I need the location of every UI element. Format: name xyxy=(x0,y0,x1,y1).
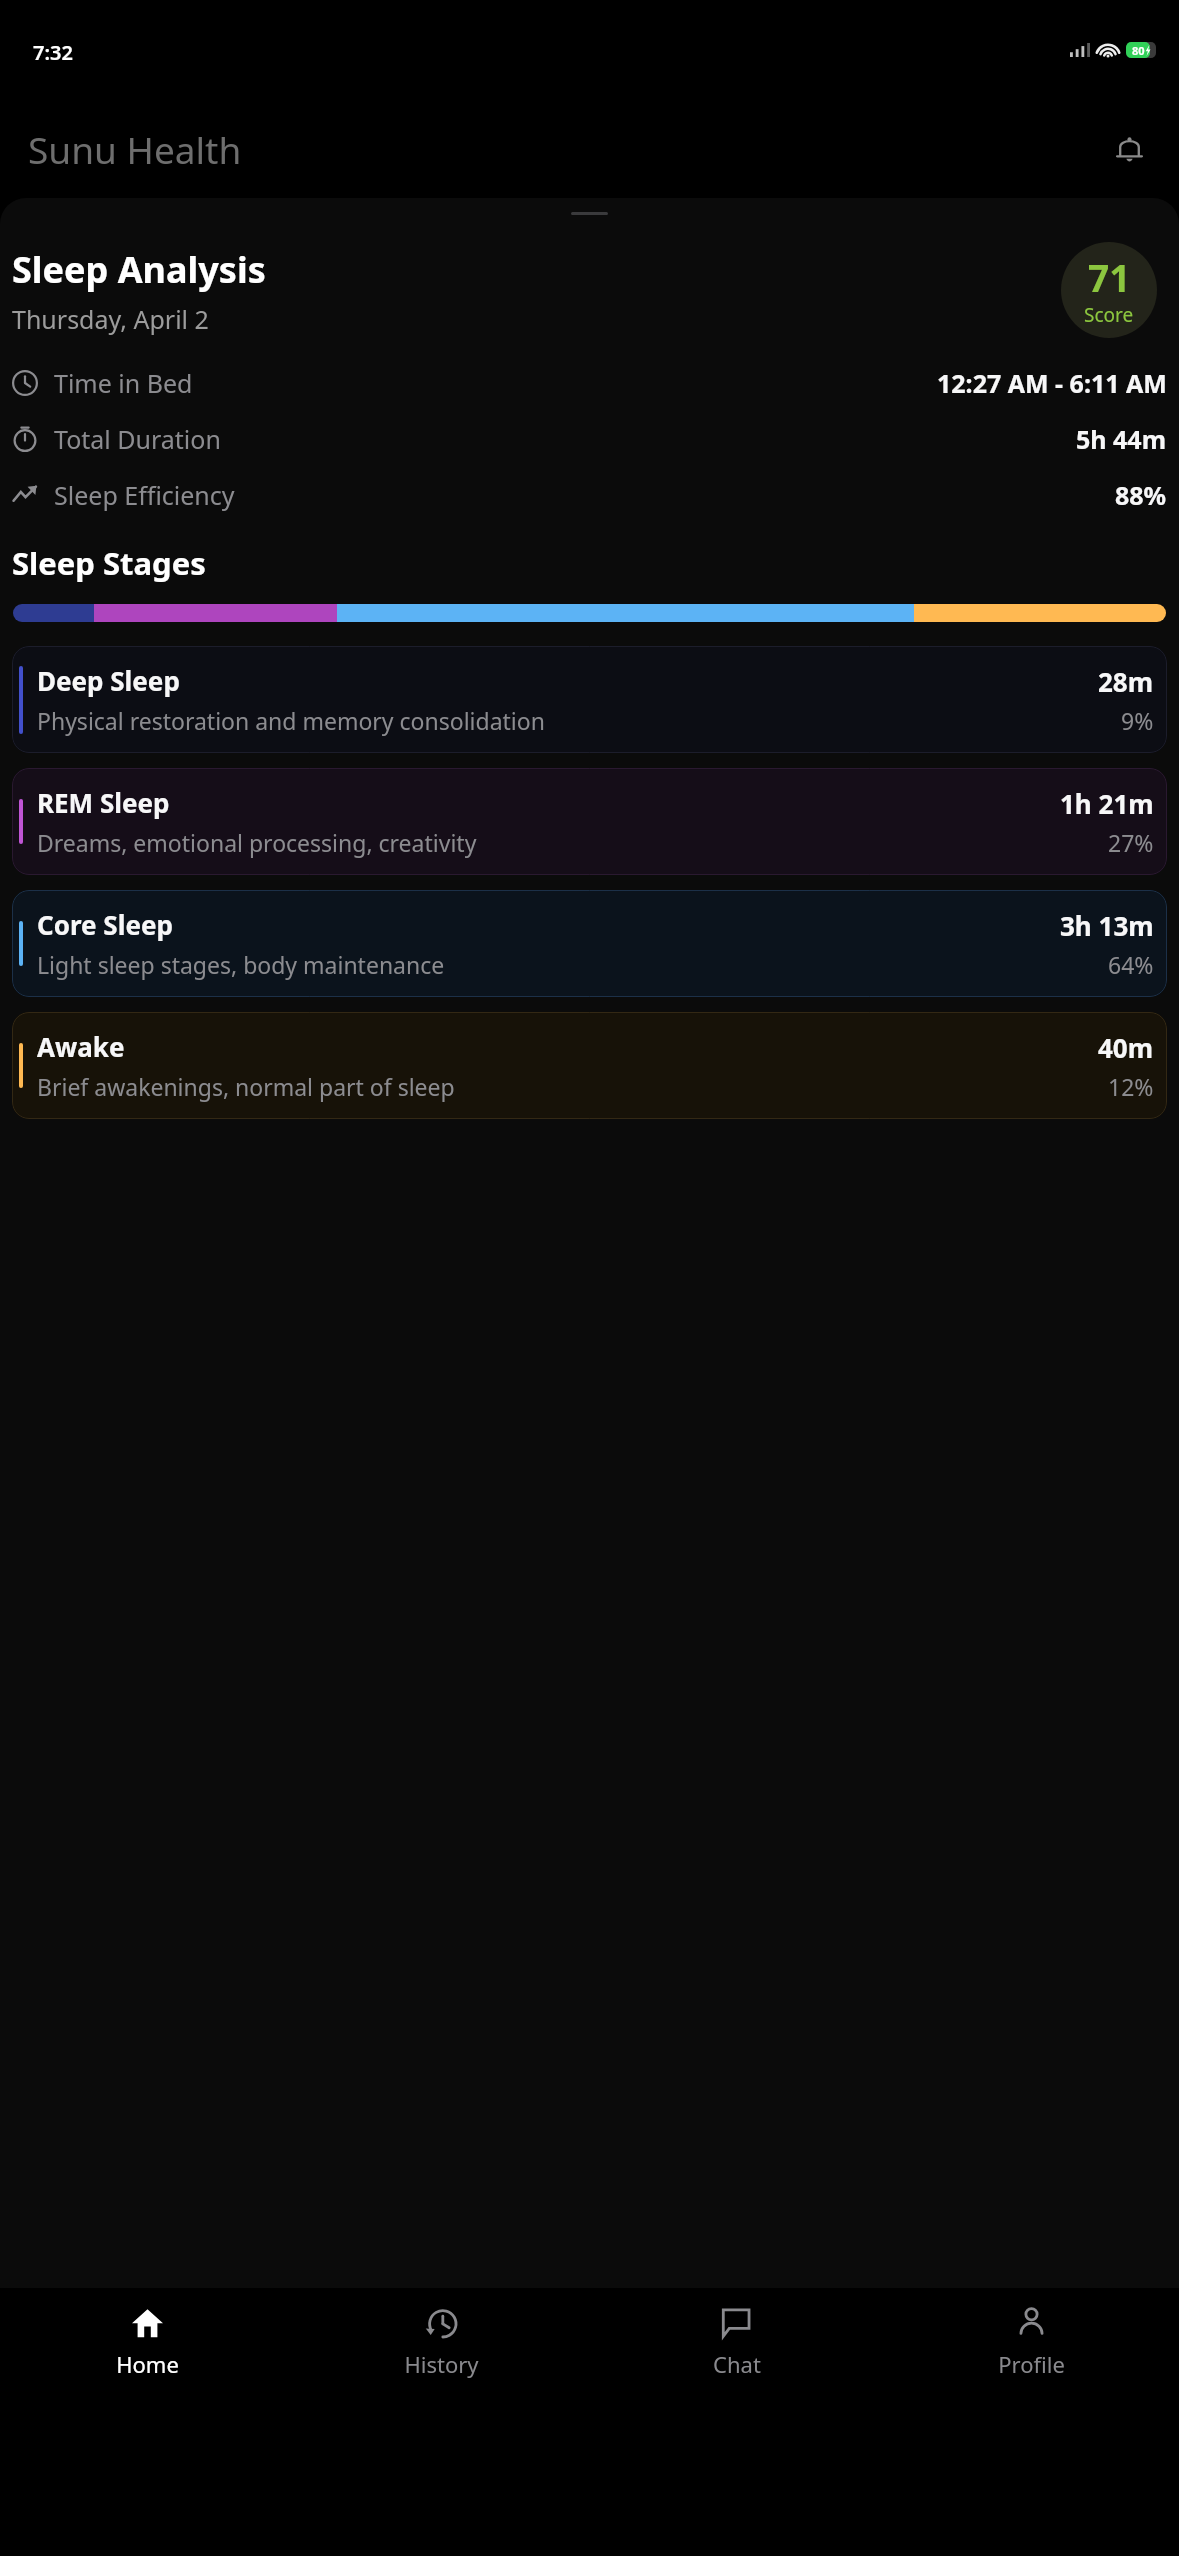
button[interactable]: REM Sleep xyxy=(12,768,1167,875)
staticText: Score xyxy=(1084,302,1134,328)
staticText: Sleep Efficiency xyxy=(54,478,235,512)
staticText: Sleep Analysis xyxy=(12,245,266,294)
staticText: 88% xyxy=(1115,478,1167,512)
staticText: 71 xyxy=(1088,252,1131,302)
button[interactable]: Deep Sleep xyxy=(12,646,1167,753)
staticText: Core Sleep xyxy=(37,907,173,942)
button[interactable]: Notifications xyxy=(1101,121,1157,177)
button[interactable]: Home xyxy=(0,2306,294,2556)
staticText: 64% xyxy=(1108,949,1154,980)
staticText: REM Sleep xyxy=(37,785,170,820)
staticText: Time in Bed xyxy=(54,366,193,400)
button[interactable]: Total Duration xyxy=(12,422,1167,456)
button[interactable]: Awake xyxy=(12,1012,1167,1119)
staticText: Total Duration xyxy=(54,422,221,456)
staticText: Profile xyxy=(998,2349,1065,2379)
staticText: 27% xyxy=(1108,827,1154,858)
staticText: Physical restoration and memory consolid… xyxy=(37,705,879,736)
button[interactable]: Chat xyxy=(589,2306,884,2556)
staticText: 7:32 xyxy=(33,39,73,66)
staticText: Sunu Health xyxy=(28,124,242,174)
staticText: Home xyxy=(116,2349,179,2379)
staticText: 80 xyxy=(1132,43,1145,58)
button[interactable]: Core Sleep xyxy=(12,890,1167,997)
staticText: Sleep Stages xyxy=(12,542,206,584)
button[interactable]: Time in Bed xyxy=(12,366,1167,400)
button[interactable]: Profile xyxy=(884,2306,1179,2556)
button[interactable]: Sleep Efficiency xyxy=(12,478,1167,512)
staticText: 12% xyxy=(1108,1071,1154,1102)
staticText: 9% xyxy=(1121,705,1154,736)
staticText: 40m xyxy=(1098,1030,1154,1065)
staticText: 1h 21m xyxy=(1060,786,1154,821)
staticText: 3h 13m xyxy=(1060,908,1154,943)
staticText: 12:27 AM - 6:11 AM xyxy=(937,366,1167,400)
staticText: Brief awakenings, normal part of sleep xyxy=(37,1071,1090,1102)
staticText: 28m xyxy=(1098,664,1154,699)
staticText: Light sleep stages, body maintenance xyxy=(37,949,1052,980)
staticText: Dreams, emotional processing, creativity xyxy=(37,827,1052,858)
staticText: 5h 44m xyxy=(1076,422,1167,456)
staticText: Awake xyxy=(37,1029,125,1064)
staticText: Thursday, April 2 xyxy=(12,302,209,336)
button[interactable]: History xyxy=(294,2306,589,2556)
staticText: Deep Sleep xyxy=(37,663,180,698)
staticText: Chat xyxy=(713,2349,761,2379)
staticText: History xyxy=(404,2349,479,2379)
